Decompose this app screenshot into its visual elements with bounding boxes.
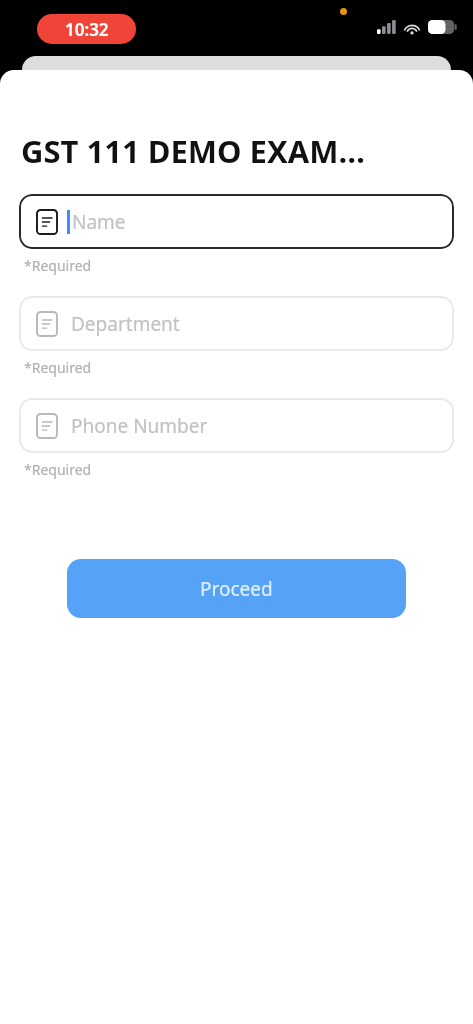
staticText: GST 111 DEMO EXAM… [21,130,365,172]
staticText: *Required [24,256,92,275]
button[interactable]: Form field [19,194,454,249]
staticText: *Required [24,460,92,479]
staticText: *Required [24,358,92,377]
button[interactable]: 10:32 [37,14,136,44]
staticText: 10:32 [65,18,109,41]
other: Form field [36,209,58,235]
staticText: Name [72,209,126,235]
button[interactable]: Form field [19,296,454,351]
other: Form field [36,311,58,337]
button[interactable]: Form field [19,398,454,453]
staticText: Department [71,311,180,337]
staticText: Phone Number [71,413,208,439]
other: Form field [36,413,58,439]
button[interactable]: Proceed [67,559,406,618]
staticText: Proceed [200,576,273,602]
